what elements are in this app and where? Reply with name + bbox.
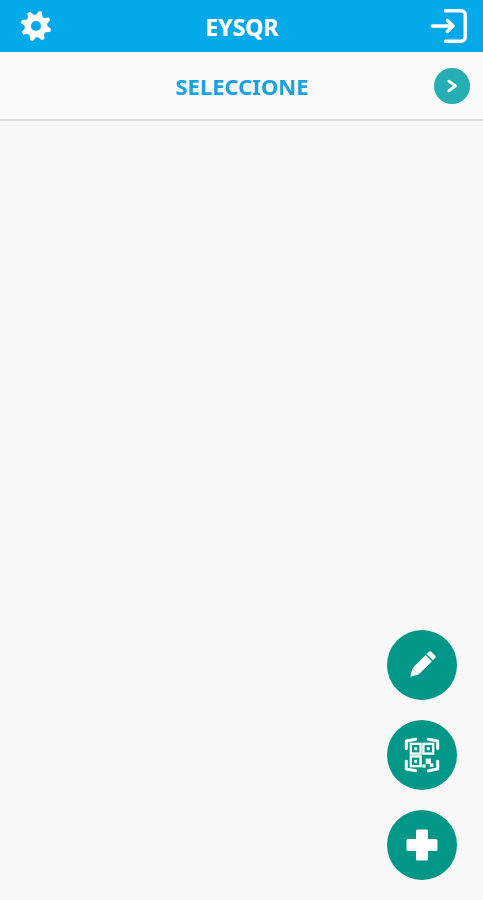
staticText: EYSQR xyxy=(205,11,279,42)
button[interactable]: Next xyxy=(434,68,470,104)
button[interactable]: Logout xyxy=(423,0,475,52)
button[interactable]: Settings xyxy=(10,0,62,52)
staticText: SELECCIONE xyxy=(175,71,309,101)
button[interactable]: Add xyxy=(387,810,457,880)
button[interactable]: Scan QR code xyxy=(387,720,457,790)
button[interactable]: Edit xyxy=(387,630,457,700)
